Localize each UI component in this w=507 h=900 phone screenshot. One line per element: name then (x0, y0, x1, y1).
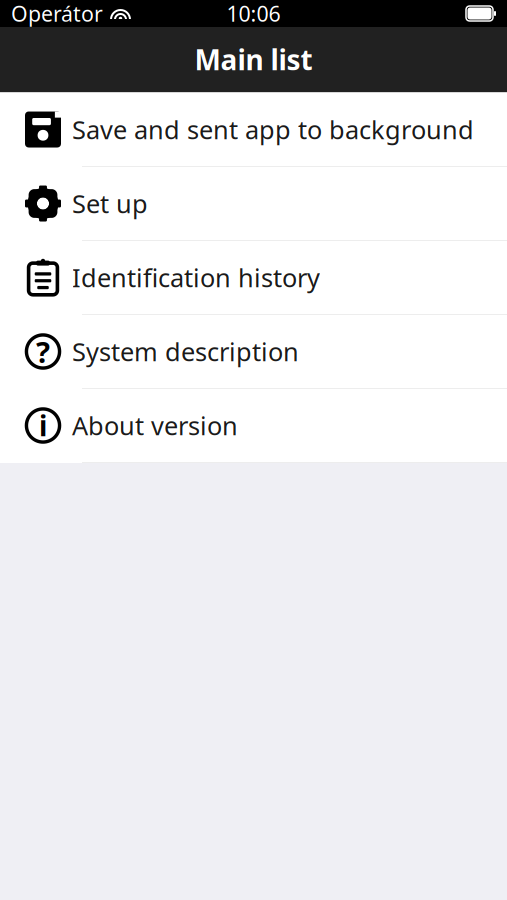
button[interactable]: Set up (0, 167, 507, 241)
staticText: Main list (194, 41, 312, 78)
staticText: Save and sent app to background (72, 113, 474, 146)
staticText: ? (36, 332, 50, 371)
staticText: Set up (72, 187, 148, 220)
staticText: Operátor (11, 0, 103, 28)
button[interactable]: i (0, 389, 507, 463)
button[interactable]: Save and sent app to background (0, 93, 507, 167)
button[interactable]: Identification history (0, 241, 507, 315)
staticText: About version (72, 409, 238, 442)
staticText: Identification history (72, 261, 320, 294)
button[interactable]: ? (0, 315, 507, 389)
staticText: i (39, 407, 47, 444)
staticText: 10:06 (226, 0, 280, 28)
staticText: System description (72, 335, 299, 368)
